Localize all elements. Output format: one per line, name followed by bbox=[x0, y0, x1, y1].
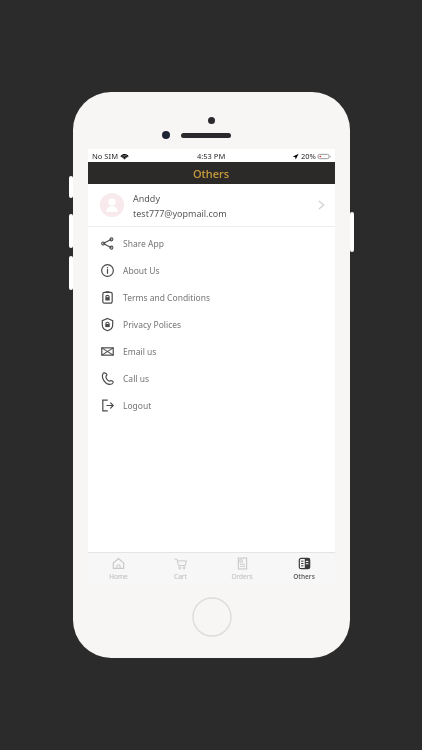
staticText: Share App bbox=[123, 238, 164, 250]
staticText: 20% bbox=[301, 151, 316, 161]
staticText: Orders bbox=[231, 572, 253, 581]
staticText: Home bbox=[109, 572, 128, 581]
staticText: Email us bbox=[123, 346, 157, 358]
button[interactable]: About Us bbox=[88, 257, 335, 284]
button[interactable]: Call us bbox=[88, 365, 335, 392]
staticText: Terms and Conditions bbox=[123, 292, 211, 304]
other: Open profile bbox=[318, 199, 325, 211]
button[interactable]: Others bbox=[273, 553, 335, 585]
button[interactable]: Cart bbox=[149, 553, 211, 585]
staticText: No SIM bbox=[92, 151, 119, 161]
button[interactable]: Anddy bbox=[88, 184, 335, 226]
staticText: Privacy Polices bbox=[123, 319, 182, 331]
button[interactable]: Email us bbox=[88, 338, 335, 365]
staticText: Anddy bbox=[133, 192, 160, 204]
staticText: Cart bbox=[174, 572, 187, 581]
staticText: 4:53 PM bbox=[197, 151, 226, 161]
staticText: Others bbox=[293, 572, 315, 581]
button[interactable]: Orders bbox=[211, 553, 273, 585]
staticText: Others bbox=[193, 166, 230, 181]
button[interactable]: Share App bbox=[88, 230, 335, 257]
staticText: About Us bbox=[123, 265, 160, 277]
staticText: Logout bbox=[123, 400, 152, 412]
button[interactable]: Home bbox=[88, 553, 149, 585]
staticText: test777@yopmail.com bbox=[133, 207, 227, 219]
button[interactable]: Privacy Polices bbox=[88, 311, 335, 338]
button[interactable]: Logout bbox=[88, 392, 335, 419]
staticText: Call us bbox=[123, 373, 150, 385]
button[interactable]: Terms and Conditions bbox=[88, 284, 335, 311]
